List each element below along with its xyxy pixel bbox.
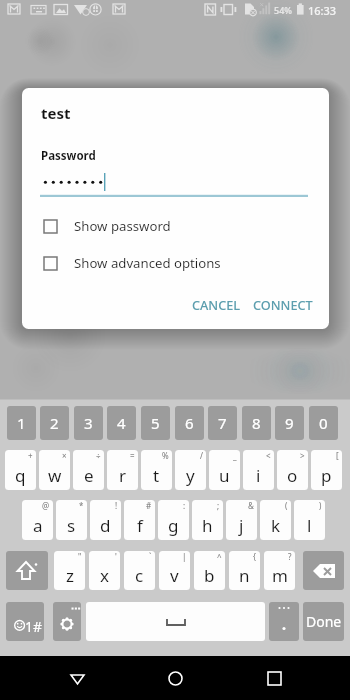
staticText: % xyxy=(162,450,169,461)
staticText: _ xyxy=(233,450,237,461)
staticText: 54% xyxy=(274,4,292,16)
button[interactable]: 0 xyxy=(309,406,338,440)
button[interactable]: ! xyxy=(90,500,121,540)
staticText: 7 xyxy=(218,413,227,433)
button[interactable]: / xyxy=(175,450,206,490)
staticText: | xyxy=(182,551,187,562)
button[interactable]: # xyxy=(124,500,155,540)
button[interactable]: 5 xyxy=(141,406,170,440)
button[interactable]: 3 xyxy=(74,406,103,440)
button[interactable]: 7 xyxy=(208,406,237,440)
staticText: g xyxy=(168,514,179,537)
button[interactable]: Shift xyxy=(6,551,48,590)
staticText: 4 xyxy=(117,413,126,433)
staticText: CANCEL xyxy=(192,296,241,313)
button[interactable]: : xyxy=(158,500,189,540)
button[interactable]: [ xyxy=(311,450,342,490)
button[interactable]: Show password xyxy=(22,213,329,239)
staticText: ( xyxy=(285,500,288,511)
staticText: b xyxy=(204,564,215,587)
staticText: × xyxy=(62,450,67,461)
button[interactable]: ^ xyxy=(194,551,225,590)
button[interactable]: { xyxy=(229,551,260,590)
button[interactable]: CONNECT xyxy=(248,291,318,318)
staticText: 9 xyxy=(285,413,294,433)
button[interactable]: × xyxy=(39,450,70,490)
button[interactable]: 2 xyxy=(40,406,69,440)
button[interactable]: 8 xyxy=(242,406,271,440)
staticText: 8 xyxy=(252,413,261,433)
staticText: 1# xyxy=(25,617,43,636)
button[interactable]: _ xyxy=(209,450,240,490)
staticText: e xyxy=(84,464,94,487)
staticText: j xyxy=(239,514,244,537)
staticText: p xyxy=(321,464,332,487)
staticText: Show password xyxy=(74,217,171,235)
staticText: ; xyxy=(217,500,220,511)
button[interactable]: ' xyxy=(89,551,120,590)
staticText: ` xyxy=(149,551,152,562)
staticText: * xyxy=(79,500,84,511)
button[interactable]: Recents xyxy=(252,656,296,700)
button[interactable]: CANCEL xyxy=(187,291,246,318)
staticText: 0 xyxy=(319,413,328,433)
staticText: " xyxy=(78,551,82,562)
button[interactable]: ; xyxy=(192,500,223,540)
button[interactable]: = xyxy=(107,450,138,490)
staticText: ) xyxy=(319,500,322,511)
button[interactable]: Done xyxy=(303,602,344,641)
staticText: r xyxy=(119,464,127,487)
button[interactable]: Show advanced options xyxy=(22,250,329,276)
button[interactable]: ) xyxy=(294,500,325,540)
staticText: ' xyxy=(115,551,117,562)
button[interactable]: Backspace xyxy=(303,551,344,590)
staticText: 16:33 xyxy=(308,3,337,18)
button[interactable]: Keyboard settings xyxy=(53,602,81,641)
staticText: h xyxy=(202,514,213,537)
button[interactable]: & xyxy=(226,500,257,540)
staticText: > xyxy=(300,450,305,461)
staticText: test xyxy=(41,103,71,123)
button[interactable]: | xyxy=(159,551,190,590)
button[interactable]: > xyxy=(277,450,308,490)
button[interactable]: < xyxy=(243,450,274,490)
button[interactable]: Home xyxy=(153,656,197,700)
staticText: y xyxy=(186,464,195,487)
button[interactable]: ÷ xyxy=(73,450,104,490)
button[interactable]: Space xyxy=(86,602,265,641)
staticText: u xyxy=(219,464,230,487)
staticText: o xyxy=(287,464,298,487)
staticText: Password xyxy=(41,148,96,164)
staticText: d xyxy=(100,514,111,537)
staticText: ? xyxy=(288,551,292,562)
button[interactable]: Back xyxy=(55,656,99,700)
button[interactable]: ` xyxy=(124,551,155,590)
button[interactable]: ? xyxy=(264,551,295,590)
button[interactable]: ( xyxy=(260,500,291,540)
staticText: CONNECT xyxy=(253,296,313,313)
button[interactable]: Symbols xyxy=(6,602,44,641)
staticText: ^ xyxy=(217,551,222,562)
staticText: [ xyxy=(336,450,339,461)
button[interactable]: Period xyxy=(269,602,299,641)
staticText: : xyxy=(183,500,186,511)
button[interactable]: @ xyxy=(22,500,53,540)
staticText: & xyxy=(248,500,254,511)
staticText: Show advanced options xyxy=(74,254,221,272)
staticText: 1 xyxy=(17,413,26,433)
button[interactable]: 1 xyxy=(7,406,36,440)
staticText: t xyxy=(153,464,160,487)
button[interactable]: 6 xyxy=(175,406,204,440)
button[interactable]: + xyxy=(5,450,36,490)
button[interactable]: * xyxy=(56,500,87,540)
staticText: / xyxy=(200,450,203,461)
staticText: q xyxy=(15,464,26,487)
button[interactable]: 9 xyxy=(275,406,304,440)
staticText: 6 xyxy=(185,413,194,433)
staticText: # xyxy=(146,500,152,511)
button[interactable]: % xyxy=(141,450,172,490)
button[interactable]: " xyxy=(54,551,85,590)
staticText: = xyxy=(130,450,135,461)
button[interactable]: 4 xyxy=(107,406,136,440)
staticText: ÷ xyxy=(96,450,101,461)
